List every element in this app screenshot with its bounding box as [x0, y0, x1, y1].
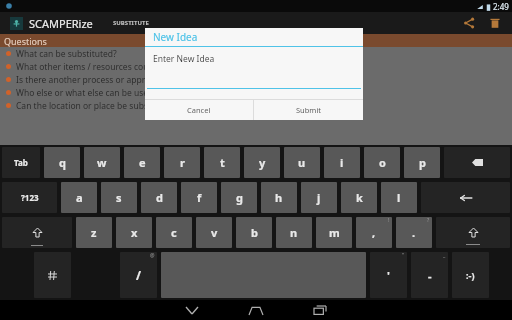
button[interactable]: Share: [456, 12, 482, 34]
button[interactable]: Can the location or place be substituted…: [0, 99, 512, 112]
button[interactable]: Who else or what else can be used instea…: [0, 86, 512, 99]
staticText: t: [220, 155, 225, 170]
staticText: SCAMPERize: [29, 16, 93, 31]
staticText: e: [139, 155, 146, 170]
staticText: r: [180, 155, 185, 170]
staticText: -: [428, 268, 432, 283]
button[interactable]: w: [84, 147, 120, 178]
staticText: @: [150, 252, 155, 259]
button[interactable]: y: [244, 147, 280, 178]
button[interactable]: What can be substituted?: [0, 47, 512, 60]
button[interactable]: s: [101, 182, 137, 213]
button[interactable]: Key: [2, 217, 72, 248]
button[interactable]: j: [301, 182, 337, 213]
staticText: p: [419, 155, 426, 170]
staticText: ': [387, 268, 390, 283]
staticText: m: [329, 225, 340, 240]
button[interactable]: k: [341, 182, 377, 213]
staticText: u: [298, 155, 306, 170]
button[interactable]: :-): [452, 252, 489, 298]
staticText: b: [251, 225, 258, 240]
staticText: What can be substituted?: [16, 48, 117, 60]
staticText: Can the location or place be substituted…: [16, 100, 179, 112]
button[interactable]: Back: [169, 300, 215, 320]
button[interactable]: t: [204, 147, 240, 178]
staticText: k: [356, 190, 363, 205]
staticText: j: [317, 190, 321, 205]
button[interactable]: /: [120, 252, 157, 298]
staticText: !: [388, 217, 390, 224]
button[interactable]: o: [364, 147, 400, 178]
button[interactable]: m: [316, 217, 352, 248]
staticText: ?123: [21, 192, 39, 203]
staticText: l: [397, 190, 401, 205]
button[interactable]: Cancel: [145, 100, 253, 120]
staticText: ,: [372, 225, 376, 240]
staticText: w: [97, 155, 107, 170]
button[interactable]: c: [156, 217, 192, 248]
button[interactable]: z: [76, 217, 112, 248]
button[interactable]: n: [276, 217, 312, 248]
button[interactable]: Recents: [297, 300, 343, 320]
staticText: c: [171, 225, 177, 240]
staticText: s: [116, 190, 122, 205]
staticText: g: [236, 190, 243, 205]
button[interactable]: d: [141, 182, 177, 213]
button[interactable]: .: [396, 217, 432, 248]
staticText: f: [197, 190, 202, 205]
button[interactable]: q: [44, 147, 80, 178]
button[interactable]: f: [181, 182, 217, 213]
staticText: New Idea: [153, 30, 198, 44]
staticText: i: [340, 155, 344, 170]
staticText: Cancel: [187, 105, 211, 115]
staticText: ": [402, 252, 405, 259]
button[interactable]: a: [61, 182, 97, 213]
button[interactable]: e: [124, 147, 160, 178]
button[interactable]: ': [370, 252, 407, 298]
button[interactable]: Is there another process or approach we …: [0, 73, 512, 86]
staticText: y: [259, 155, 266, 170]
staticText: :-): [466, 269, 475, 281]
staticText: .: [412, 225, 416, 240]
button[interactable]: Shift: [436, 217, 510, 248]
button[interactable]: b: [236, 217, 272, 248]
staticText: Who else or what else can be used instea…: [16, 87, 189, 99]
staticText: h: [275, 190, 283, 205]
button[interactable]: ?123: [2, 182, 57, 213]
staticText: z: [91, 225, 97, 240]
button[interactable]: h: [261, 182, 297, 213]
button[interactable]: -: [411, 252, 448, 298]
staticText: /: [136, 267, 141, 283]
staticText: d: [156, 190, 163, 205]
button[interactable]: Key: [34, 252, 71, 298]
button[interactable]: v: [196, 217, 232, 248]
staticText: v: [211, 225, 218, 240]
button[interactable]: p: [404, 147, 440, 178]
staticText: q: [59, 155, 66, 170]
button[interactable]: What other items / resources could be us…: [0, 60, 512, 73]
button[interactable]: ,: [356, 217, 392, 248]
staticText: Tab: [14, 157, 28, 168]
staticText: Enter New Idea: [153, 53, 215, 65]
staticText: n: [290, 225, 298, 240]
staticText: What other items / resources could be us…: [16, 61, 225, 73]
button[interactable]: l: [381, 182, 417, 213]
staticText: Questions: [4, 35, 47, 47]
staticText: ?: [427, 217, 430, 224]
staticText: o: [379, 155, 386, 170]
button[interactable]: Tab: [2, 147, 40, 178]
button[interactable]: x: [116, 217, 152, 248]
button[interactable]: Submit: [254, 100, 363, 120]
staticText: SUBSTITUTE: [113, 19, 149, 27]
staticText: x: [131, 225, 138, 240]
button[interactable]: Backspace: [444, 147, 510, 178]
button[interactable]: Delete: [482, 12, 508, 34]
button[interactable]: g: [221, 182, 257, 213]
button[interactable]: Home: [233, 300, 279, 320]
button[interactable]: u: [284, 147, 320, 178]
button[interactable]: r: [164, 147, 200, 178]
staticText: a: [76, 190, 83, 205]
button[interactable]: i: [324, 147, 360, 178]
button[interactable]: Enter: [421, 182, 510, 213]
